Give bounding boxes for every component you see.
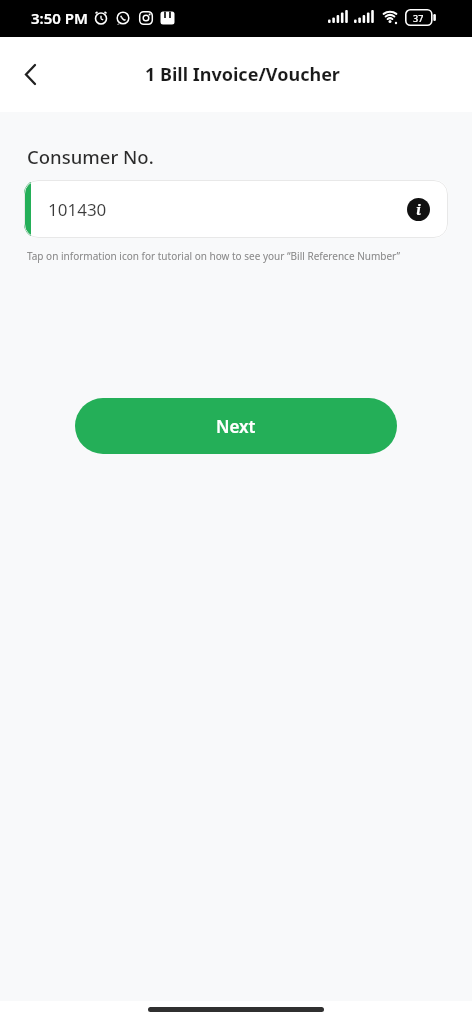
staticText: 101430 xyxy=(48,198,107,221)
staticText: i xyxy=(416,200,421,219)
staticText: Tap on information icon for tutorial on … xyxy=(27,249,401,263)
staticText: 3:50 PM xyxy=(31,8,88,28)
button[interactable] xyxy=(8,53,52,97)
staticText: 37 xyxy=(413,12,424,24)
button[interactable]: i xyxy=(407,198,430,221)
staticText: Next xyxy=(216,415,256,438)
button[interactable]: Next xyxy=(75,398,397,454)
button[interactable]: 101430 xyxy=(24,180,448,238)
staticText: Consumer No. xyxy=(27,144,154,169)
staticText: 1 Bill Invoice/Voucher xyxy=(145,62,340,87)
